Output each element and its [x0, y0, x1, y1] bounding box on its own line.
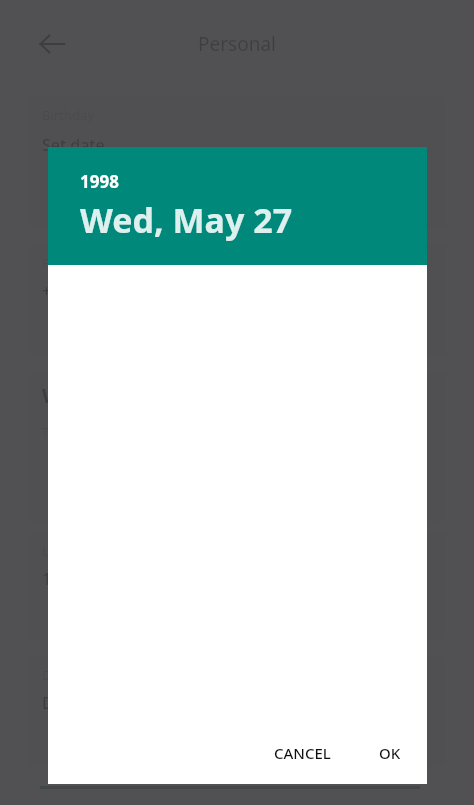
button[interactable]: CANCEL: [262, 735, 343, 771]
staticText: CANCEL: [274, 743, 331, 763]
staticText: Design: [42, 692, 95, 714]
staticText: Title: [42, 423, 68, 441]
staticText: Set date: [42, 134, 105, 156]
button[interactable]: OK: [367, 735, 413, 771]
staticText: Work: [42, 382, 95, 409]
button[interactable]: 1998: [80, 170, 119, 193]
staticText: 1 Main Street: [42, 568, 144, 590]
staticText: Personal: [198, 31, 276, 57]
button[interactable]: Back: [28, 20, 76, 68]
staticText: Phone: [42, 254, 82, 272]
staticText: Location: [42, 542, 95, 560]
staticText: Department: [42, 666, 117, 684]
staticText: +1 555 0134: [42, 280, 133, 302]
button[interactable]: Wed, May 27: [80, 197, 293, 243]
staticText: 1998: [80, 170, 119, 193]
staticText: OK: [379, 743, 401, 763]
staticText: Wed, May 27: [80, 197, 293, 243]
